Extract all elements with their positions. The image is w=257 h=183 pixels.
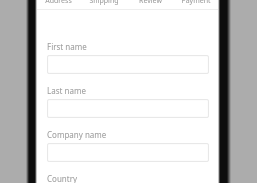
button[interactable]: Review bbox=[127, 0, 173, 9]
staticText: Last name bbox=[47, 85, 86, 96]
button[interactable]: Payment bbox=[173, 0, 219, 9]
button[interactable] bbox=[47, 55, 209, 74]
staticText: First name bbox=[47, 41, 87, 52]
button[interactable]: Address bbox=[36, 0, 81, 9]
staticText: Shipping bbox=[89, 0, 119, 6]
staticText: Review bbox=[139, 0, 162, 6]
button[interactable] bbox=[47, 99, 209, 118]
button[interactable]: Shipping bbox=[81, 0, 127, 9]
staticText: Company name bbox=[47, 129, 107, 140]
staticText: Payment bbox=[181, 0, 211, 6]
staticText: Country bbox=[47, 173, 78, 183]
button[interactable] bbox=[47, 143, 209, 162]
staticText: Address bbox=[45, 0, 72, 6]
